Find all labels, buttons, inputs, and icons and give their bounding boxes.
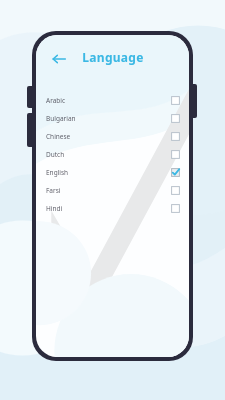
button[interactable]: Bulgarian: [36, 109, 189, 127]
button[interactable]: Hindi: [36, 199, 189, 217]
button[interactable]: Arabic: [36, 91, 189, 109]
staticText: Bulgarian: [46, 114, 171, 123]
staticText: Hindi: [46, 204, 171, 213]
button[interactable]: English: [36, 163, 189, 181]
button[interactable]: Chinese: [36, 127, 189, 145]
staticText: Farsi: [46, 186, 171, 195]
staticText: Dutch: [46, 150, 171, 159]
staticText: English: [46, 168, 171, 177]
button[interactable]: Farsi: [36, 181, 189, 199]
staticText: Chinese: [46, 132, 171, 141]
staticText: Arabic: [46, 96, 171, 105]
button[interactable]: Back: [46, 46, 72, 72]
button[interactable]: Dutch: [36, 145, 189, 163]
staticText: Language: [82, 49, 144, 65]
